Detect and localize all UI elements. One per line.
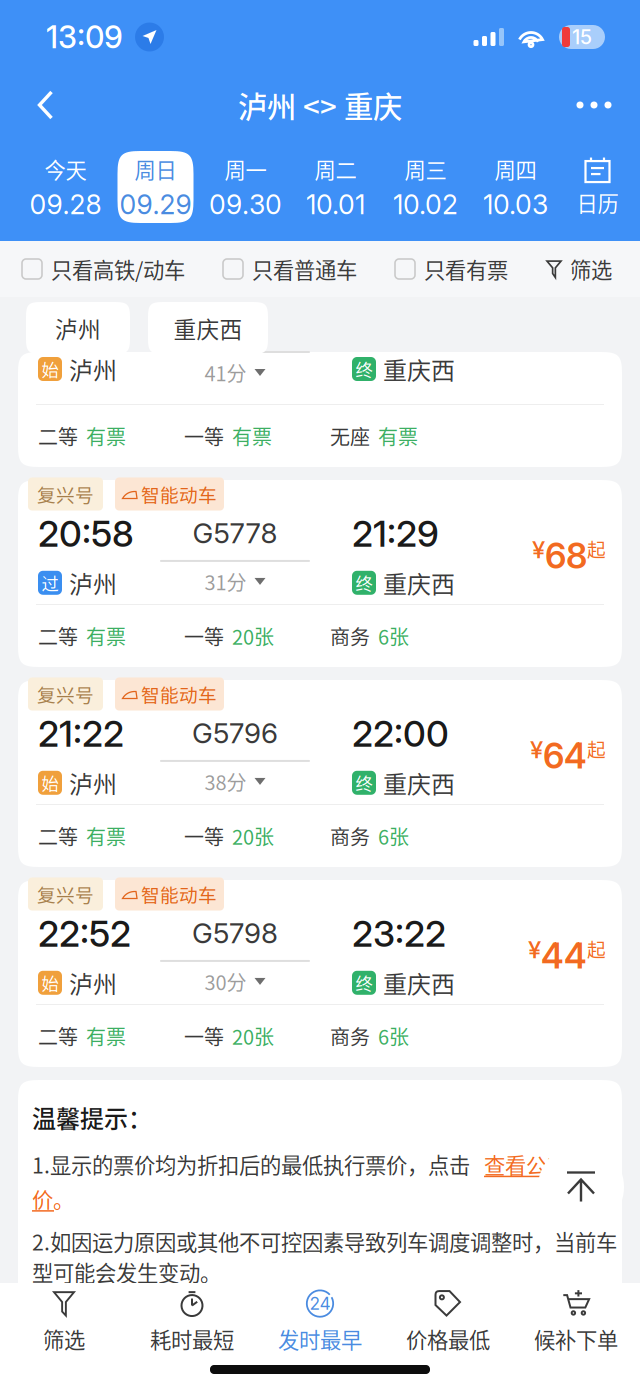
staticText: 20张: [232, 621, 274, 650]
button[interactable]: 24: [256, 1283, 384, 1359]
button[interactable]: 重庆西: [148, 302, 268, 354]
button[interactable]: 只看普通车: [223, 246, 357, 292]
staticText: 有票: [86, 821, 126, 850]
staticText: 始: [41, 770, 58, 795]
staticText: 周二: [314, 153, 356, 184]
staticText: 二等: [38, 621, 78, 650]
button[interactable]: 周三: [387, 151, 463, 223]
staticText: 22:00: [352, 712, 449, 755]
staticText: 商务: [330, 821, 370, 850]
staticText: 6张: [378, 621, 409, 650]
button[interactable]: 周日: [117, 151, 193, 223]
staticText: 始: [41, 970, 58, 995]
staticText: 24: [309, 1293, 330, 1314]
staticText: 候补下单: [534, 1324, 618, 1354]
button[interactable]: 周四: [477, 151, 553, 223]
staticText: 44: [541, 935, 587, 977]
staticText: 只看高铁/动车: [51, 254, 185, 284]
button[interactable]: 周一: [207, 151, 283, 223]
staticText: 二等: [38, 821, 78, 850]
staticText: 1.显示的票价均为折扣后的最低执行票价，点击: [32, 1149, 475, 1180]
staticText: 起: [587, 535, 606, 562]
button[interactable]: 日历: [567, 150, 627, 224]
staticText: ¥: [530, 735, 543, 764]
staticText: 一等: [184, 1021, 224, 1050]
staticText: 20张: [232, 821, 274, 850]
staticText: 10.03: [483, 188, 548, 221]
staticText: 终: [355, 570, 372, 595]
button[interactable]: 筛选: [546, 246, 612, 292]
staticText: 始: [41, 356, 58, 382]
staticText: 13:09: [46, 18, 123, 55]
staticText: 二等: [38, 421, 78, 450]
staticText: 过: [41, 570, 58, 595]
button[interactable]: 只看有票: [395, 246, 508, 292]
staticText: 智能动车: [141, 680, 217, 707]
staticText: 21:22: [38, 712, 124, 755]
staticText: 15: [572, 25, 592, 49]
staticText: 终: [355, 356, 372, 382]
staticText: G5778: [192, 516, 277, 550]
staticText: 终: [355, 970, 372, 995]
staticText: 10.01: [306, 188, 365, 221]
staticText: 泸州: [55, 312, 101, 344]
staticText: 22:52: [38, 912, 131, 955]
staticText: ¥: [528, 935, 541, 964]
staticText: 泸州: [69, 565, 117, 600]
staticText: G5796: [192, 716, 278, 750]
staticText: 今天: [44, 153, 86, 184]
staticText: 64: [543, 735, 587, 777]
button[interactable]: 复兴号: [18, 880, 622, 1067]
button[interactable]: 回到顶部: [538, 1144, 624, 1230]
staticText: 重庆西: [383, 765, 455, 800]
button[interactable]: 复兴号: [18, 680, 622, 867]
staticText: 一等: [184, 621, 224, 650]
staticText: 有票: [86, 421, 126, 450]
button[interactable]: 更多: [568, 79, 620, 131]
staticText: 温馨提示：: [32, 1100, 152, 1135]
button[interactable]: 周二: [297, 151, 373, 223]
staticText: 41分: [204, 358, 246, 387]
staticText: 终: [355, 770, 372, 795]
staticText: 商务: [330, 1021, 370, 1050]
staticText: 价。: [32, 1183, 74, 1214]
button[interactable]: 今天: [27, 151, 103, 223]
staticText: 20:58: [38, 512, 134, 555]
staticText: 有票: [378, 421, 418, 450]
staticText: 重庆西: [383, 965, 455, 1000]
staticText: 起: [587, 735, 606, 762]
staticText: 重庆西: [173, 312, 242, 344]
staticText: 周一: [224, 153, 266, 184]
button[interactable]: 只看高铁/动车: [22, 246, 185, 292]
staticText: 有票: [86, 621, 126, 650]
staticText: 一等: [184, 421, 224, 450]
button[interactable]: 始: [18, 352, 622, 467]
staticText: 耗时最短: [150, 1324, 234, 1354]
staticText: 6张: [378, 821, 409, 850]
staticText: 发时最早: [278, 1324, 362, 1354]
button[interactable]: 泸州: [26, 302, 130, 354]
staticText: 日历: [576, 187, 618, 218]
staticText: 38分: [204, 767, 246, 796]
staticText: 查看公布票: [484, 1149, 589, 1180]
staticText: 09.28: [29, 188, 101, 221]
staticText: 智能动车: [141, 480, 217, 507]
staticText: 有票: [86, 1021, 126, 1050]
staticText: 复兴号: [37, 480, 94, 507]
button[interactable]: 候补下单: [512, 1283, 640, 1359]
staticText: 31分: [204, 567, 246, 596]
staticText: 无座: [330, 421, 370, 450]
button[interactable]: 筛选: [0, 1283, 128, 1359]
staticText: 起: [587, 935, 606, 962]
staticText: 09.30: [209, 188, 282, 221]
staticText: 10.02: [393, 188, 458, 221]
button[interactable]: 耗时最短: [128, 1283, 256, 1359]
staticText: 23:22: [352, 912, 446, 955]
button[interactable]: 价格最低: [384, 1283, 512, 1359]
button[interactable]: 返回: [20, 79, 72, 131]
staticText: 泸州: [69, 965, 117, 1000]
button[interactable]: 复兴号: [18, 480, 622, 667]
staticText: 有票: [232, 421, 272, 450]
staticText: 泸州: [69, 765, 117, 800]
staticText: 价格最低: [406, 1324, 490, 1354]
